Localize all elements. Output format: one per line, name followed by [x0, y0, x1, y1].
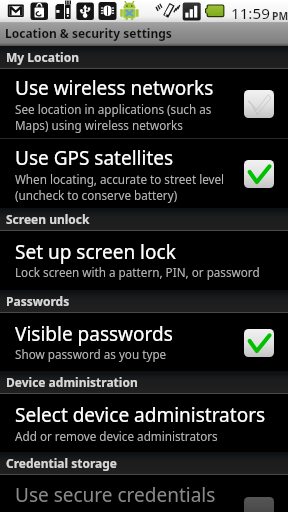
button[interactable]: Use GPS satellites	[0, 139, 288, 208]
button[interactable]: Visible passwords	[0, 313, 288, 371]
button[interactable]: Use secure credentials	[0, 475, 288, 512]
staticText: Visible passwords	[15, 321, 173, 347]
staticText: Add or remove device administrators	[15, 428, 218, 444]
button[interactable]: Set up screen lock	[0, 231, 288, 290]
staticText: Use secure credentials	[15, 482, 216, 508]
other: Status icons	[0, 0, 288, 23]
staticText: Select device administrators	[15, 402, 266, 428]
staticText: Location & security settings	[5, 25, 172, 41]
staticText: Lock screen with a pattern, PIN, or pass…	[15, 264, 260, 280]
staticText: When locating, accurate to street level	[15, 171, 225, 187]
button[interactable]: Select device administrators	[0, 394, 288, 452]
staticText: See location in applications (such as	[15, 101, 212, 117]
staticText: PM	[272, 9, 288, 23]
staticText: Passwords	[6, 293, 70, 309]
staticText: Show password as you type	[15, 346, 167, 362]
staticText: Screen unlock	[6, 211, 90, 227]
staticText: 11:59	[231, 3, 270, 24]
staticText: Set up screen lock	[15, 239, 176, 265]
staticText: Credential storage	[6, 455, 118, 471]
staticText: Use GPS satellites	[15, 145, 174, 171]
staticText: (uncheck to conserve battery)	[15, 187, 178, 203]
staticText: My Location	[6, 49, 79, 65]
staticText: Use wireless networks	[15, 75, 214, 101]
button[interactable]: Use wireless networks	[0, 69, 288, 138]
staticText: Device administration	[6, 374, 138, 390]
staticText: Maps) using wireless networks	[15, 117, 183, 133]
